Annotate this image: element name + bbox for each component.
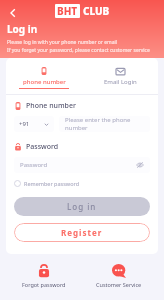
staticText: BHT (57, 4, 78, 18)
button[interactable]: Forgot password (18, 260, 70, 292)
staticText: Please log in with your phone number or … (7, 39, 118, 46)
button[interactable]: phone number (6, 58, 82, 94)
button[interactable]: +91 (14, 116, 54, 132)
staticText: Log in (7, 22, 38, 36)
staticText: phone number (23, 78, 66, 86)
button[interactable]: Remember password (14, 180, 80, 187)
staticText: If you forget your password, please cont… (7, 47, 150, 54)
staticText: +91 (19, 120, 30, 128)
button[interactable]: Register (14, 223, 150, 242)
staticText: Please enter the phone number (65, 116, 144, 132)
staticText: Remember password (24, 180, 80, 187)
staticText: Password (26, 142, 59, 152)
button[interactable]: Back (4, 4, 22, 22)
staticText: Email Login (104, 78, 137, 86)
button[interactable]: Customer Service (92, 260, 146, 292)
button[interactable]: Email Login (82, 58, 158, 94)
staticText: Register (61, 227, 103, 238)
button[interactable]: Password (14, 157, 150, 173)
staticText: Forgot password (22, 281, 66, 288)
staticText: Customer Service (96, 281, 142, 288)
button[interactable]: Please enter the phone number (59, 116, 150, 132)
staticText: CLUB (83, 4, 110, 18)
staticText: Log in (67, 201, 97, 212)
button[interactable]: Log in (14, 197, 150, 216)
button[interactable]: Show password (136, 161, 144, 169)
staticText: Password (20, 161, 48, 169)
staticText: Phone number (26, 101, 76, 111)
